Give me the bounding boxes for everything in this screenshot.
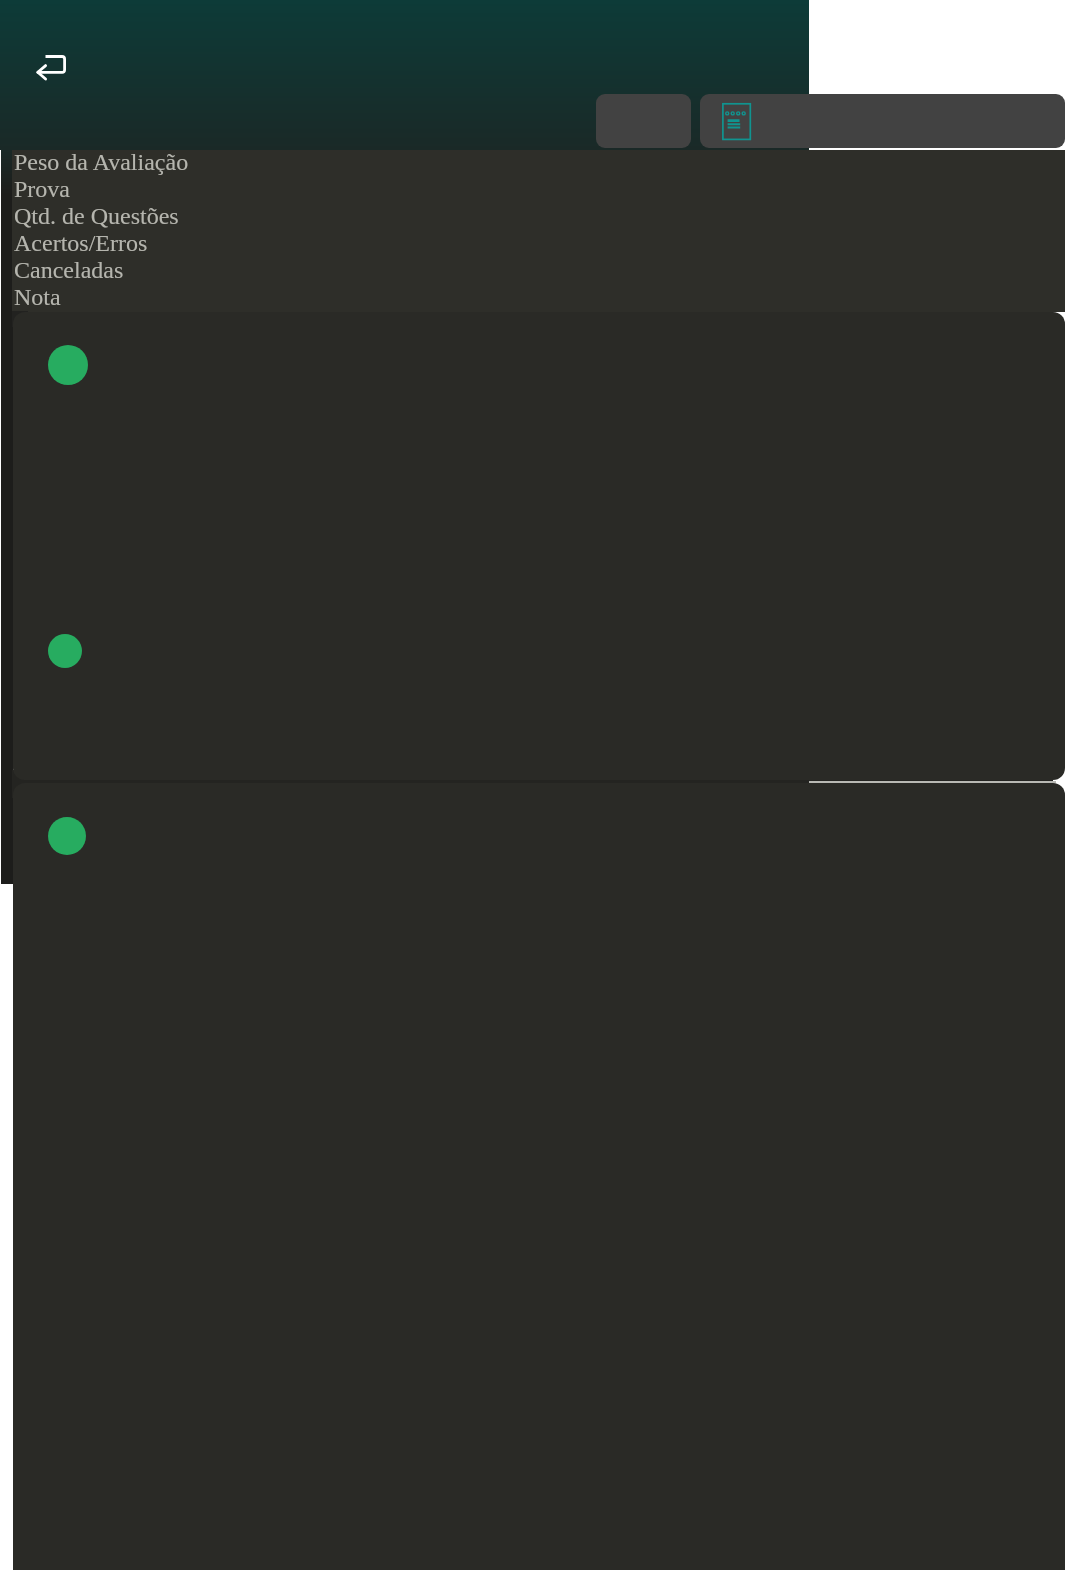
staticText: Peso da Avaliação	[14, 149, 189, 176]
staticText: Qtd. de Questões	[14, 203, 179, 230]
button[interactable]: Notes	[700, 94, 1065, 148]
staticText: Nota	[14, 284, 61, 311]
button[interactable]	[13, 783, 1065, 1570]
staticText: Canceladas	[14, 257, 124, 284]
button[interactable]	[13, 312, 1065, 780]
staticText: Acertos/Erros	[14, 230, 148, 257]
button[interactable]: More options	[596, 94, 691, 148]
staticText: Prova	[14, 176, 70, 203]
button[interactable]: Back	[20, 37, 86, 103]
